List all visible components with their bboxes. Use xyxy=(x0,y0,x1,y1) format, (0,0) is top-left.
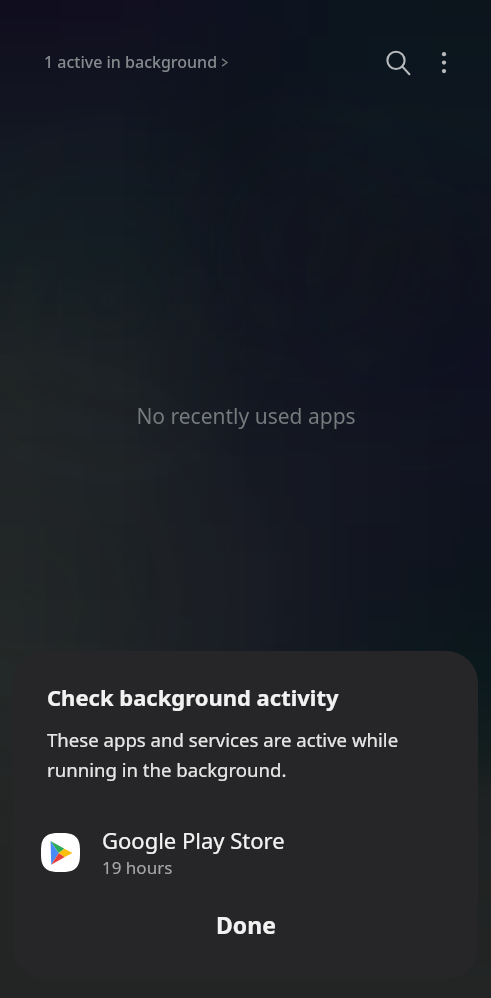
staticText: 19 hours xyxy=(102,856,173,879)
button[interactable]: Search xyxy=(374,38,418,82)
staticText: These apps and services are active while… xyxy=(47,727,399,782)
button[interactable]: More options xyxy=(422,40,466,84)
staticText: Google Play Store xyxy=(102,825,285,855)
button[interactable]: Google Play Store xyxy=(41,825,438,879)
button[interactable]: 1 active in background xyxy=(44,51,229,73)
staticText: Check background activity xyxy=(47,682,339,712)
staticText: No recently used apps xyxy=(136,402,356,431)
staticText: 1 active in background xyxy=(44,51,218,73)
button[interactable]: Done xyxy=(47,900,444,948)
staticText: Done xyxy=(216,909,276,940)
